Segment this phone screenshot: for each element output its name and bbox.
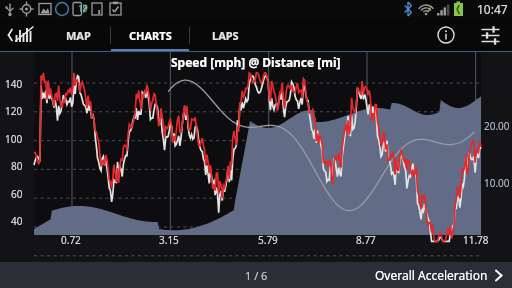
staticText: Overall Acceleration (375, 267, 488, 283)
staticText: 100 (5, 132, 23, 146)
button[interactable]: Navigate up (0, 18, 46, 52)
staticText: 5.79 (258, 233, 278, 247)
staticText: 120 (5, 104, 23, 118)
staticText: 40 (11, 214, 23, 228)
staticText: 11.78 (463, 233, 489, 247)
staticText: 3.15 (159, 233, 179, 247)
staticText: 0.72 (61, 233, 81, 247)
staticText: MAP (66, 28, 91, 43)
button[interactable]: Info (424, 18, 468, 52)
button[interactable]: CHARTS (111, 18, 189, 52)
button[interactable]: LAPS (190, 18, 260, 52)
staticText: LAPS (212, 28, 239, 43)
staticText: 20.00 (484, 119, 510, 133)
staticText: 140 (5, 77, 23, 91)
button[interactable]: Overall Acceleration (375, 262, 506, 288)
staticText: 60 (11, 187, 23, 201)
staticText: 10:47 (477, 1, 508, 17)
staticText: 80 (11, 159, 23, 173)
staticText: 18 (78, 3, 88, 14)
button[interactable]: Settings (468, 18, 512, 52)
button[interactable]: MAP (46, 18, 110, 52)
staticText: 10.00 (484, 176, 510, 190)
staticText: 8.77 (356, 233, 376, 247)
staticText: CHARTS (129, 28, 172, 43)
staticText: 1 / 6 (245, 268, 268, 283)
staticText: Speed [mph] @ Distance [mi] (171, 54, 341, 70)
